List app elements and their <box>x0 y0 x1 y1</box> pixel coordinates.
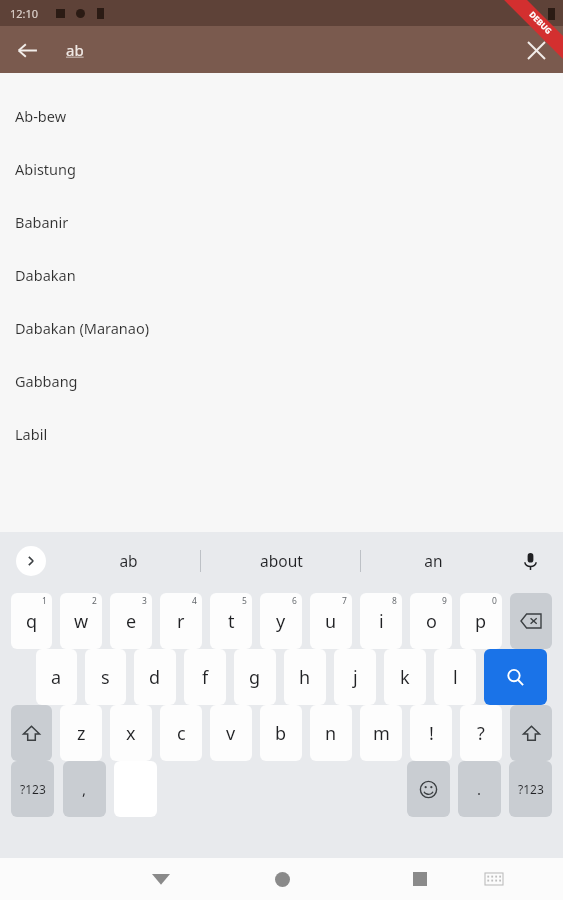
staticText: t <box>228 609 235 634</box>
button[interactable]: y <box>260 593 302 649</box>
staticText: p <box>475 609 487 634</box>
button[interactable]: r <box>160 593 202 649</box>
button[interactable]: about <box>226 532 336 589</box>
staticText: w <box>74 609 89 634</box>
button[interactable]: Clear search <box>517 31 555 69</box>
button[interactable]: c <box>160 705 202 761</box>
button[interactable]: a <box>36 649 77 705</box>
button[interactable]: z <box>60 705 102 761</box>
button[interactable]: Switch keyboard <box>473 858 515 900</box>
staticText: l <box>453 665 458 690</box>
button[interactable]: n <box>310 705 352 761</box>
button[interactable]: v <box>210 705 252 761</box>
button[interactable]: Backspace <box>510 593 552 649</box>
staticText: ab <box>66 40 84 60</box>
staticText: about <box>260 550 303 571</box>
staticText: q <box>26 609 38 634</box>
button[interactable]: an <box>378 532 488 589</box>
staticText: e <box>126 609 137 634</box>
staticText: o <box>426 609 437 634</box>
staticText: Ab-bew <box>15 106 67 126</box>
button[interactable]: w <box>60 593 102 649</box>
staticText: Labil <box>15 424 48 444</box>
staticText: a <box>51 665 62 690</box>
button[interactable]: ab <box>73 532 183 589</box>
button[interactable]: ? <box>460 705 502 761</box>
button[interactable]: u <box>310 593 352 649</box>
staticText: x <box>126 721 136 746</box>
staticText: h <box>299 665 311 690</box>
button[interactable]: , <box>63 761 106 817</box>
staticText: Dabakan (Maranao) <box>15 318 150 338</box>
staticText: m <box>373 721 390 746</box>
staticText: ab <box>119 550 138 571</box>
button[interactable]: k <box>384 649 426 705</box>
button[interactable]: Back <box>140 858 182 900</box>
button[interactable]: h <box>284 649 326 705</box>
button[interactable]: ! <box>410 705 452 761</box>
button[interactable]: Shift <box>510 705 552 761</box>
staticText: 0 <box>492 595 497 607</box>
button[interactable]: j <box>334 649 376 705</box>
button[interactable]: m <box>360 705 402 761</box>
button[interactable]: Gabbang <box>0 354 563 407</box>
button[interactable]: p <box>460 593 502 649</box>
staticText: r <box>177 609 185 634</box>
staticText: i <box>379 609 384 634</box>
staticText: , <box>82 779 87 799</box>
staticText: ?123 <box>20 781 46 797</box>
staticText: Dabakan <box>15 265 76 285</box>
staticText: d <box>149 665 161 690</box>
button[interactable]: Recents <box>399 858 441 900</box>
staticText: DEBUG <box>527 9 555 36</box>
button[interactable]: Dabakan <box>0 248 563 301</box>
button[interactable]: l <box>434 649 476 705</box>
button[interactable]: Search <box>484 649 547 705</box>
staticText: 7 <box>342 595 347 607</box>
button[interactable]: Dabakan (Maranao) <box>0 301 563 354</box>
button[interactable]: o <box>410 593 452 649</box>
staticText: 3 <box>142 595 147 607</box>
staticText: 5 <box>242 595 247 607</box>
staticText: n <box>325 721 337 746</box>
button[interactable]: Abistung <box>0 142 563 195</box>
button[interactable]: f <box>184 649 226 705</box>
staticText: Babanir <box>15 212 69 232</box>
button[interactable]: t <box>210 593 252 649</box>
button[interactable]: Emoji <box>407 761 450 817</box>
button[interactable]: . <box>458 761 501 817</box>
button[interactable]: Symbols <box>509 761 552 817</box>
button[interactable]: Voice input <box>513 544 547 578</box>
staticText: ! <box>429 721 434 746</box>
button[interactable]: Shift <box>11 705 52 761</box>
button[interactable]: Back <box>8 31 46 69</box>
button[interactable]: Home <box>261 858 303 900</box>
staticText: c <box>177 721 186 746</box>
button[interactable]: b <box>260 705 302 761</box>
button[interactable]: s <box>85 649 126 705</box>
button[interactable]: e <box>110 593 152 649</box>
button[interactable]: i <box>360 593 402 649</box>
button[interactable]: Symbols <box>11 761 54 817</box>
staticText: g <box>249 665 261 690</box>
staticText: an <box>424 550 443 571</box>
staticText: 8 <box>392 595 397 607</box>
button[interactable]: Labil <box>0 407 563 460</box>
button[interactable]: d <box>134 649 176 705</box>
staticText: f <box>202 665 209 690</box>
staticText: k <box>400 665 410 690</box>
staticText: . <box>477 779 482 799</box>
staticText: y <box>276 609 286 634</box>
staticText: 12:10 <box>10 6 39 21</box>
staticText: 1 <box>42 595 47 607</box>
button[interactable]: x <box>110 705 152 761</box>
staticText: ?123 <box>518 781 544 797</box>
staticText: s <box>101 665 110 690</box>
button[interactable]: Ab-bew <box>0 89 563 142</box>
staticText: 6 <box>292 595 297 607</box>
button[interactable]: q <box>11 593 52 649</box>
button[interactable]: g <box>234 649 276 705</box>
button[interactable]: Babanir <box>0 195 563 248</box>
button[interactable]: More suggestions <box>16 546 46 576</box>
